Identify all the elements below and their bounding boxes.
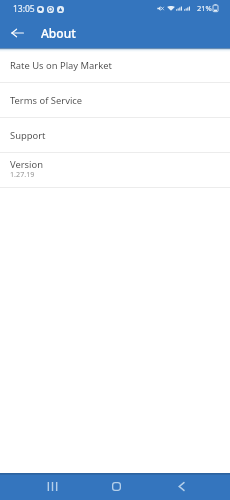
staticText: 21%	[197, 3, 212, 13]
button[interactable]: Recent apps	[32, 473, 72, 500]
button[interactable]: Rate Us on Play Market	[0, 48, 230, 83]
staticText: Rate Us on Play Market	[10, 59, 112, 72]
button[interactable]: Terms of Service	[0, 83, 230, 118]
staticText: Version	[10, 158, 44, 171]
button[interactable]: Support	[0, 118, 230, 153]
button[interactable]: Back	[161, 473, 201, 500]
staticText: Terms of Service	[10, 94, 83, 107]
button[interactable]: Version	[0, 153, 230, 188]
button[interactable]: Home	[96, 473, 136, 500]
staticText: Support	[10, 129, 46, 142]
staticText: About	[41, 25, 76, 41]
staticText: 13:05	[13, 3, 35, 15]
button[interactable]: Navigate up	[0, 16, 34, 48]
staticText: 1.27.19	[10, 169, 35, 179]
